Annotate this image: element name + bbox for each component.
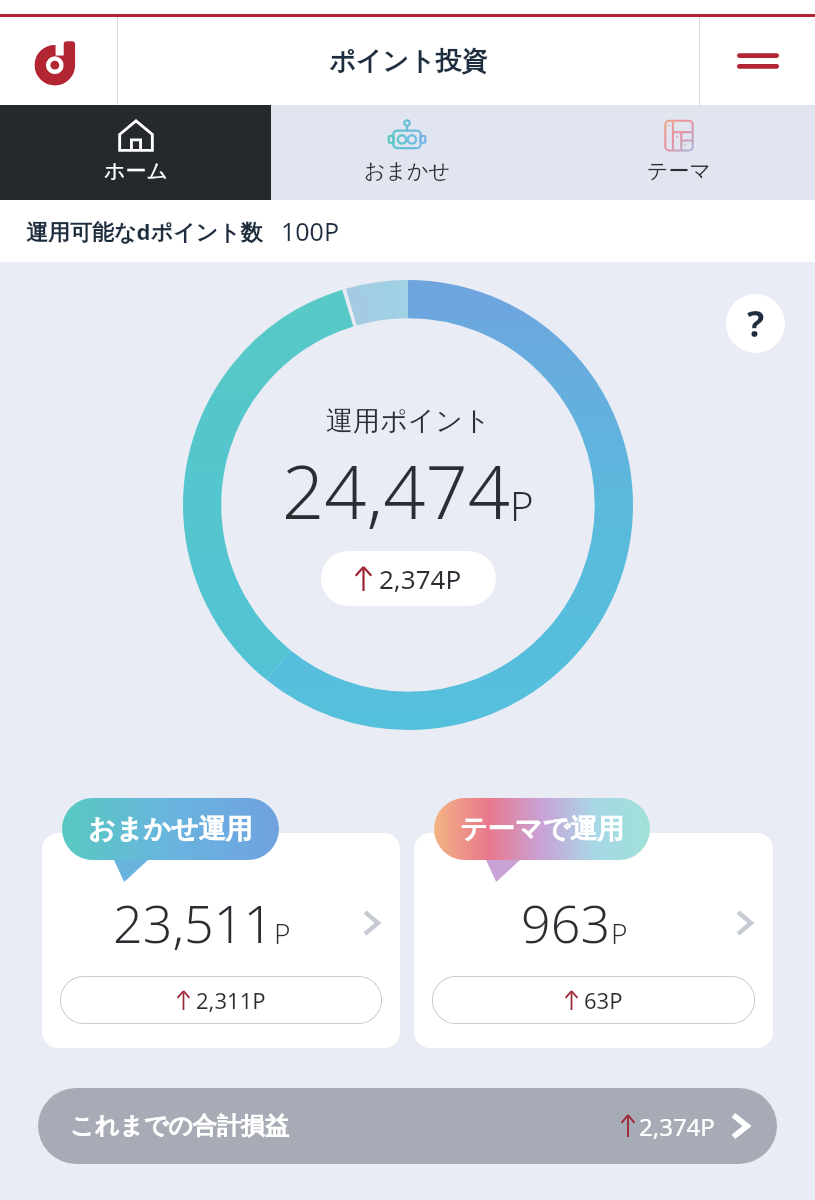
button[interactable]: ホーム — [0, 105, 271, 200]
button[interactable]: テーマ — [543, 105, 815, 200]
staticText: 63P — [584, 985, 623, 1015]
staticText: 運用可能なdポイント数 — [26, 216, 263, 246]
staticText: 運用ポイント — [326, 404, 491, 438]
button[interactable]: docomo home — [0, 17, 117, 105]
staticText: 100P — [281, 214, 340, 248]
button[interactable]: 23,511 — [42, 798, 400, 1048]
staticText: これまでの合計損益 — [70, 1111, 289, 1141]
staticText: 963 — [521, 887, 611, 958]
button[interactable]: 963 — [414, 798, 773, 1048]
staticText: おまかせ運用 — [88, 812, 253, 846]
staticText: おまかせ — [364, 158, 450, 184]
button[interactable]: おまかせ — [271, 105, 543, 200]
staticText: P — [274, 914, 291, 952]
staticText: 2,311P — [196, 985, 266, 1015]
staticText: 2,374P — [639, 1110, 715, 1143]
staticText: テーマで運用 — [460, 812, 624, 846]
button[interactable]: Help — [726, 294, 785, 353]
staticText: 24,474 — [282, 440, 510, 541]
staticText: P — [611, 914, 628, 952]
staticText: テーマ — [647, 158, 711, 184]
staticText: 2,374P — [379, 561, 462, 596]
staticText: ? — [747, 299, 765, 348]
button[interactable]: Menu — [700, 17, 815, 105]
button[interactable]: これまでの合計損益 — [38, 1088, 777, 1164]
staticText: ポイント投資 — [329, 45, 488, 78]
staticText: P — [510, 478, 534, 532]
staticText: ホーム — [104, 158, 168, 184]
staticText: 23,511 — [113, 887, 274, 958]
